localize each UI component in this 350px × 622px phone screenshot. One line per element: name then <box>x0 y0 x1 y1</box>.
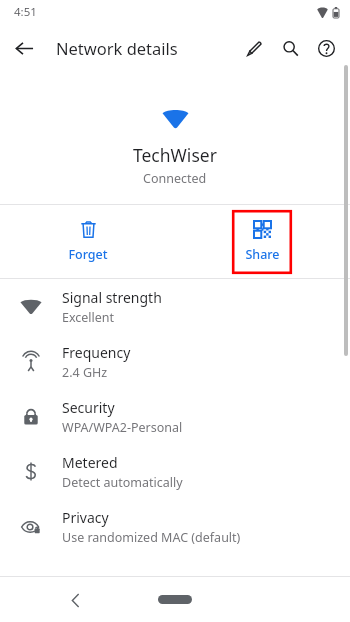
staticText: Network details <box>56 37 178 59</box>
button[interactable]: Forget <box>50 215 126 269</box>
staticText: Signal strength <box>62 288 162 307</box>
button[interactable]: Signal strength <box>0 279 350 334</box>
staticText: TechWiser <box>133 143 217 167</box>
button[interactable]: Metered <box>0 444 350 499</box>
button[interactable]: Share <box>227 215 298 269</box>
button[interactable]: Edit <box>236 30 272 66</box>
staticText: Privacy <box>62 508 109 527</box>
staticText: 4:51 <box>14 4 37 20</box>
staticText: 2.4 GHz <box>62 364 108 381</box>
staticText: Forget <box>68 246 108 263</box>
staticText: Frequency <box>62 343 131 362</box>
staticText: Detect automatically <box>62 474 183 491</box>
button[interactable]: Help <box>308 30 344 66</box>
button[interactable]: Security <box>0 389 350 444</box>
button[interactable]: Privacy <box>0 499 350 554</box>
button[interactable]: Back <box>6 30 42 66</box>
staticText: Use randomized MAC (default) <box>62 529 241 546</box>
staticText: WPA/WPA2-Personal <box>62 419 183 436</box>
button[interactable]: Search <box>272 30 308 66</box>
button[interactable]: Back <box>58 583 92 617</box>
staticText: Excellent <box>62 309 115 326</box>
staticText: Security <box>62 398 115 417</box>
staticText: Share <box>245 246 280 263</box>
staticText: Connected <box>143 170 207 187</box>
button[interactable]: Home <box>158 595 192 604</box>
staticText: Metered <box>62 453 118 472</box>
button[interactable]: Frequency <box>0 334 350 389</box>
